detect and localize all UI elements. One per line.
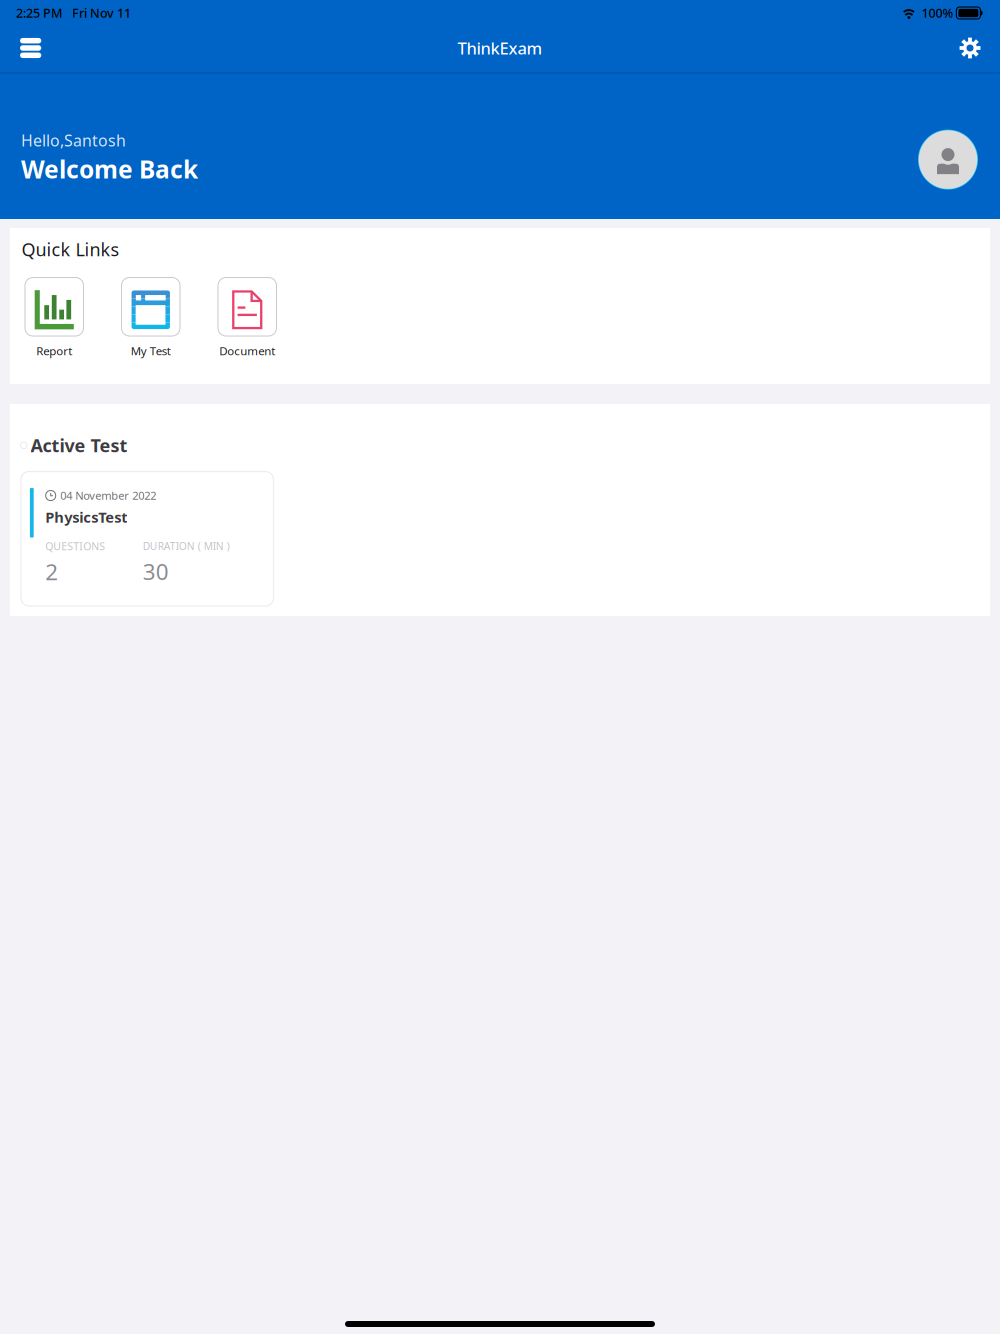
button[interactable]: Document	[218, 277, 276, 359]
staticText: DURATION ( MIN )	[143, 539, 230, 553]
staticText: Hello,Santosh	[21, 130, 126, 151]
staticText: Report	[36, 343, 72, 359]
staticText: Fri Nov 11	[72, 4, 131, 22]
staticText: 04 November 2022	[60, 488, 156, 503]
button[interactable]: Menu	[0, 24, 55, 72]
staticText: QUESTIONS	[45, 539, 105, 553]
staticText: 30	[143, 556, 169, 586]
staticText: Quick Links	[21, 237, 119, 261]
staticText: 2	[45, 556, 58, 587]
staticText: My Test	[131, 343, 171, 359]
staticText: 2:25 PM	[16, 4, 63, 22]
button[interactable]: 04 November 2022	[21, 471, 273, 606]
staticText: ThinkExam	[457, 37, 542, 59]
button[interactable]: Report	[25, 277, 83, 359]
button[interactable]: Settings	[945, 24, 1000, 72]
staticText: Document	[219, 343, 275, 359]
staticText: Active Test	[31, 433, 128, 457]
staticText: PhysicsTest	[45, 507, 127, 527]
staticText: Welcome Back	[21, 152, 198, 186]
button[interactable]: My Test	[121, 277, 180, 359]
staticText: 100%	[921, 4, 953, 22]
button[interactable]: Profile	[918, 130, 978, 190]
